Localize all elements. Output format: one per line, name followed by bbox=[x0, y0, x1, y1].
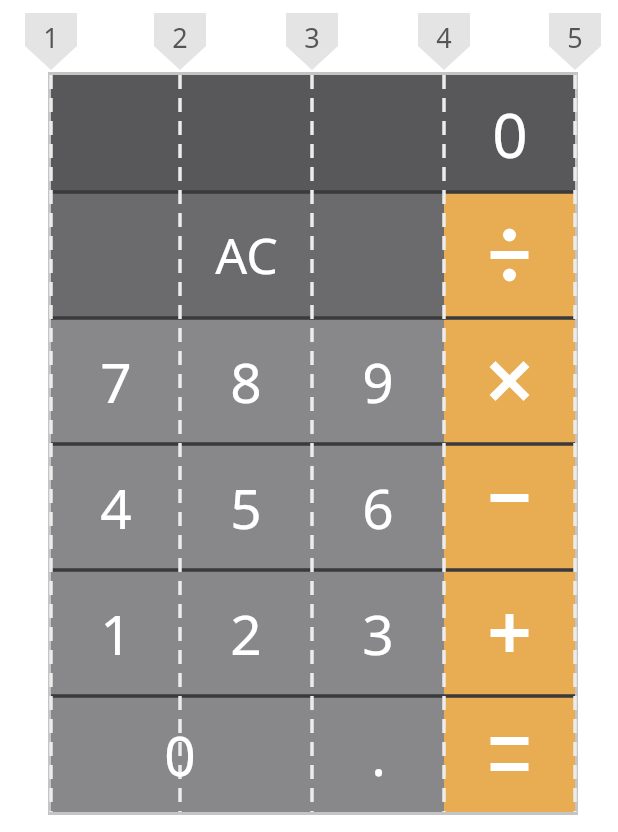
staticText: 8 bbox=[230, 344, 262, 419]
button[interactable]: Subtract bbox=[444, 444, 575, 570]
staticText: 2 bbox=[172, 19, 188, 56]
staticText: 9 bbox=[362, 344, 394, 419]
staticText: AC bbox=[215, 221, 278, 289]
button[interactable] bbox=[51, 696, 312, 812]
staticText: 6 bbox=[362, 470, 394, 545]
button[interactable]: 3 bbox=[312, 570, 444, 696]
button[interactable]: 8 bbox=[180, 318, 312, 444]
staticText: 4 bbox=[100, 470, 132, 545]
staticText: 2 bbox=[230, 596, 262, 671]
staticText: 5 bbox=[567, 19, 583, 56]
button[interactable]: 7 bbox=[51, 318, 180, 444]
button[interactable]: 5 bbox=[180, 444, 312, 570]
button[interactable]: Add bbox=[444, 570, 575, 696]
staticText: 1 bbox=[43, 19, 59, 56]
button[interactable]: 2 bbox=[180, 570, 312, 696]
staticText: 1 bbox=[100, 596, 132, 671]
button[interactable]: 9 bbox=[312, 318, 444, 444]
button[interactable]: . bbox=[312, 696, 444, 812]
staticText: 3 bbox=[362, 596, 394, 671]
staticText: 0 bbox=[164, 717, 196, 792]
button[interactable]: 4 bbox=[51, 444, 180, 570]
staticText: 4 bbox=[436, 19, 452, 56]
staticText: 7 bbox=[100, 344, 132, 419]
staticText: 3 bbox=[304, 19, 320, 56]
staticText: . bbox=[371, 717, 386, 792]
button[interactable] bbox=[51, 192, 444, 318]
staticText: 5 bbox=[230, 470, 262, 545]
button[interactable]: Multiply bbox=[444, 318, 575, 444]
staticText: 0 bbox=[492, 92, 528, 176]
button[interactable]: 1 bbox=[51, 570, 180, 696]
button[interactable]: Equals bbox=[444, 696, 575, 812]
button[interactable]: Divide bbox=[444, 192, 575, 318]
button[interactable]: 6 bbox=[312, 444, 444, 570]
